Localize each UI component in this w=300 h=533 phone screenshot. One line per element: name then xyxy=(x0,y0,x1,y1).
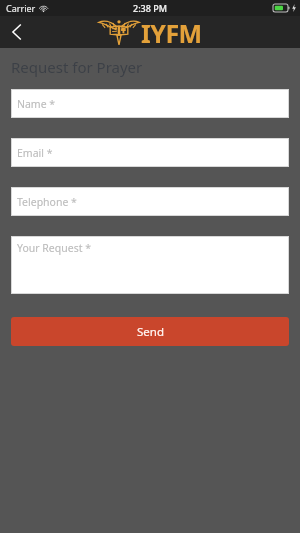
staticText: Your Request * xyxy=(17,241,91,255)
button[interactable]: Send xyxy=(11,317,289,346)
staticText: Request for Prayer xyxy=(11,57,143,77)
staticText: 2:38 PM xyxy=(133,2,167,14)
staticText: Telephone * xyxy=(17,195,77,209)
staticText: IYFM xyxy=(141,16,202,48)
button[interactable]: Email * xyxy=(11,138,289,167)
staticText: Email * xyxy=(17,146,53,160)
staticText: Name * xyxy=(17,97,56,111)
button[interactable]: Telephone * xyxy=(11,187,289,216)
staticText: Carrier xyxy=(6,2,36,14)
button[interactable]: Back xyxy=(0,16,32,48)
button[interactable]: Your Request * xyxy=(11,236,289,294)
button[interactable]: Name * xyxy=(11,89,289,118)
staticText: Send xyxy=(137,324,164,340)
